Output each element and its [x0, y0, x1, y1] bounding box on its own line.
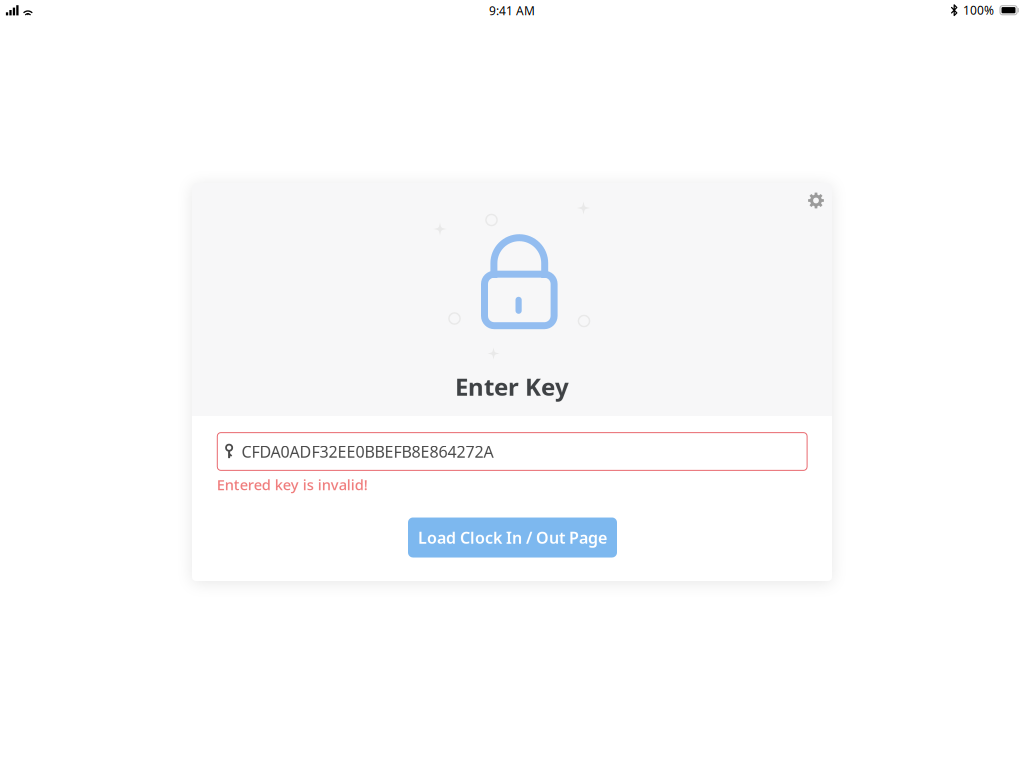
button[interactable]: Load Clock In / Out Page	[408, 517, 617, 557]
button[interactable]: Settings	[799, 183, 833, 217]
staticText: CFDA0ADF32EE0BBEFB8E864272A	[241, 441, 493, 462]
staticText: 9:41 AM	[489, 3, 535, 18]
staticText: Load Clock In / Out Page	[418, 527, 607, 548]
button[interactable]: CFDA0ADF32EE0BBEFB8E864272A	[217, 432, 808, 471]
staticText: Enter Key	[455, 371, 569, 402]
staticText: Entered key is invalid!	[217, 475, 368, 494]
staticText: 100%	[963, 2, 994, 18]
